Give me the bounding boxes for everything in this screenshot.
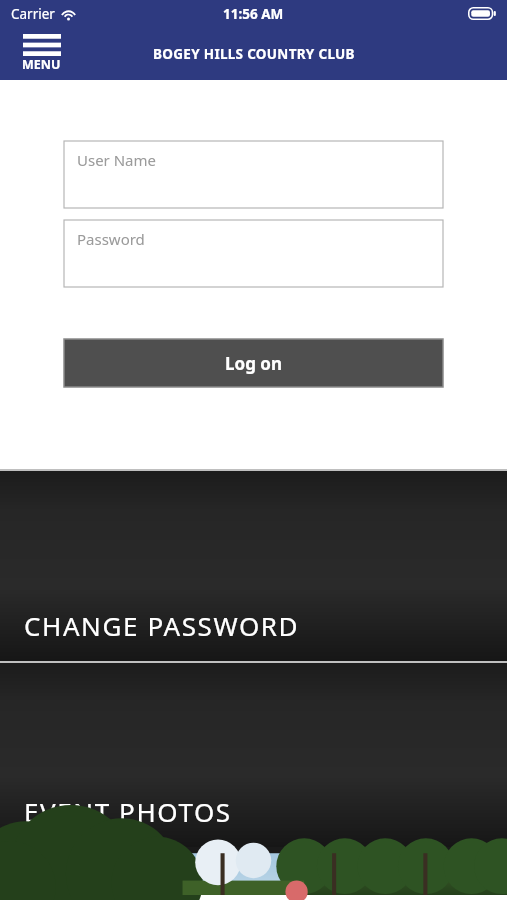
button[interactable]: CHANGE PASSWORD <box>0 469 507 661</box>
staticText: EVENT PHOTOS <box>24 794 232 829</box>
button[interactable]: Password <box>64 220 443 287</box>
button[interactable]: Menu <box>18 32 65 75</box>
staticText: User Name <box>77 150 157 170</box>
staticText: Log on <box>225 352 282 375</box>
staticText: 11:56 AM <box>223 5 284 23</box>
staticText: CHANGE PASSWORD <box>24 608 300 643</box>
button[interactable]: EVENT PHOTOS <box>0 661 507 847</box>
staticText: Password <box>77 229 145 249</box>
button[interactable] <box>0 847 507 895</box>
button[interactable]: Log on <box>64 339 443 387</box>
staticText: MENU <box>22 56 61 73</box>
staticText: Carrier <box>11 5 55 23</box>
staticText: BOGEY HILLS COUNTRY CLUB <box>153 45 355 63</box>
button[interactable]: User Name <box>64 141 443 208</box>
